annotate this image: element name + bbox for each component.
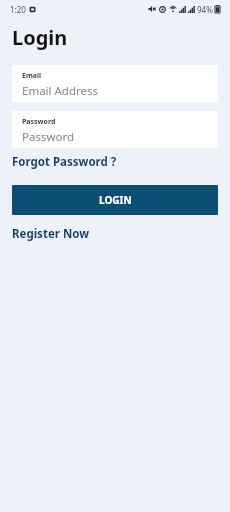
staticText: 94%: [197, 4, 213, 15]
button[interactable]: Forgot Password ?: [12, 152, 117, 172]
button[interactable]: Email: [12, 65, 218, 102]
staticText: Password: [22, 117, 56, 127]
staticText: Email: [22, 71, 42, 81]
staticText: Password: [22, 129, 75, 145]
staticText: Email Address: [22, 83, 99, 99]
staticText: Login: [12, 24, 68, 51]
staticText: Register Now: [12, 226, 90, 242]
button[interactable]: Register Now: [12, 224, 90, 244]
staticText: LOGIN: [99, 193, 132, 207]
button[interactable]: Password: [12, 111, 218, 148]
staticText: Forgot Password ?: [12, 154, 117, 170]
button[interactable]: LOGIN: [12, 185, 218, 215]
staticText: 1:20: [10, 4, 26, 15]
